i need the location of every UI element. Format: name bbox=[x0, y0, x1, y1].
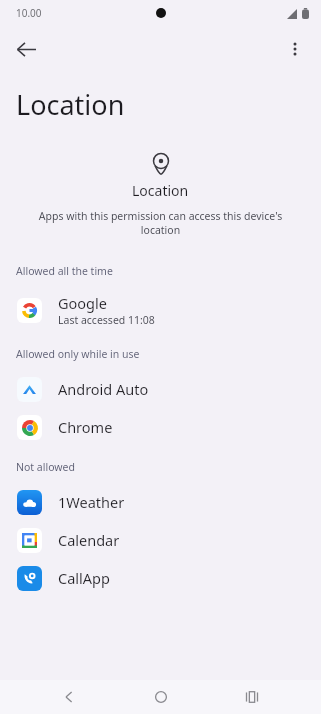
button[interactable]: Google bbox=[0, 287, 321, 333]
button[interactable]: Back bbox=[46, 680, 92, 714]
button[interactable]: 1Weather bbox=[0, 483, 321, 521]
button[interactable]: CallApp bbox=[0, 559, 321, 597]
staticText: 1Weather bbox=[58, 492, 125, 512]
staticText: Location bbox=[16, 86, 125, 123]
button[interactable]: Home bbox=[138, 680, 184, 714]
button[interactable]: Android Auto bbox=[0, 370, 321, 408]
staticText: Location bbox=[132, 181, 189, 200]
staticText: Google bbox=[58, 293, 107, 313]
button[interactable]: Recent apps bbox=[229, 680, 275, 714]
staticText: Allowed all the time bbox=[16, 264, 113, 278]
staticText: Not allowed bbox=[16, 460, 75, 474]
button[interactable]: Calendar bbox=[0, 521, 321, 559]
button[interactable]: More options bbox=[275, 29, 315, 69]
staticText: Last accessed 11:08 bbox=[58, 313, 155, 327]
staticText: Chrome bbox=[58, 417, 113, 437]
button[interactable]: Back bbox=[6, 29, 46, 69]
button[interactable]: Chrome bbox=[0, 408, 321, 446]
staticText: Allowed only while in use bbox=[16, 347, 140, 361]
staticText: Android Auto bbox=[58, 379, 149, 399]
staticText: Calendar bbox=[58, 530, 120, 550]
staticText: 10.00 bbox=[16, 6, 42, 20]
staticText: CallApp bbox=[58, 568, 110, 588]
staticText: Apps with this permission can access thi… bbox=[34, 209, 287, 237]
